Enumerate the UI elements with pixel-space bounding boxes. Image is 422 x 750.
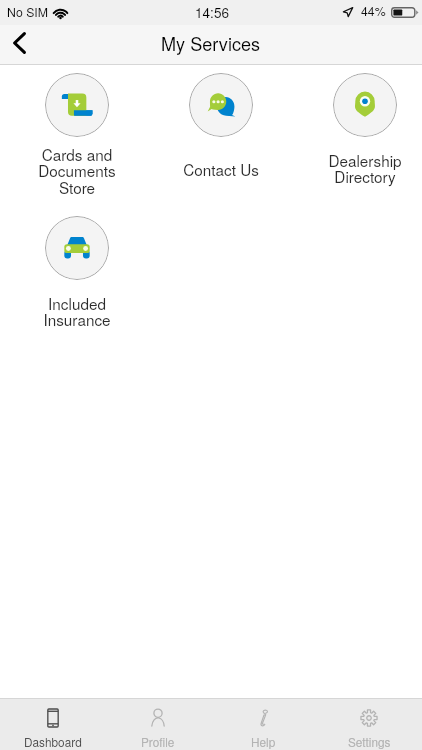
staticText: No SIM xyxy=(7,3,48,21)
button[interactable]: Dealership Directory xyxy=(293,65,422,208)
staticText: 44% xyxy=(361,2,386,20)
button[interactable]: Included Insurance xyxy=(5,208,149,351)
button[interactable]: Profile xyxy=(105,699,210,750)
button[interactable]: Dashboard xyxy=(0,699,105,750)
button[interactable]: Back xyxy=(0,25,44,64)
staticText: Included Insurance xyxy=(43,292,111,331)
button[interactable]: Settings xyxy=(316,699,422,750)
staticText: Dealership Directory xyxy=(328,149,402,188)
staticText: Dashboard xyxy=(24,733,82,750)
staticText: Help xyxy=(251,733,276,750)
staticText: 14:56 xyxy=(195,2,230,21)
staticText: My Services xyxy=(161,30,261,56)
button[interactable]: Help xyxy=(210,699,316,750)
button[interactable]: Cards and Documents Store xyxy=(5,65,149,208)
staticText: Contact Us xyxy=(183,158,259,180)
staticText: Settings xyxy=(348,733,391,750)
staticText: Cards and Documents Store xyxy=(38,143,116,194)
staticText: Profile xyxy=(141,733,175,750)
button[interactable]: Contact Us xyxy=(149,65,293,208)
